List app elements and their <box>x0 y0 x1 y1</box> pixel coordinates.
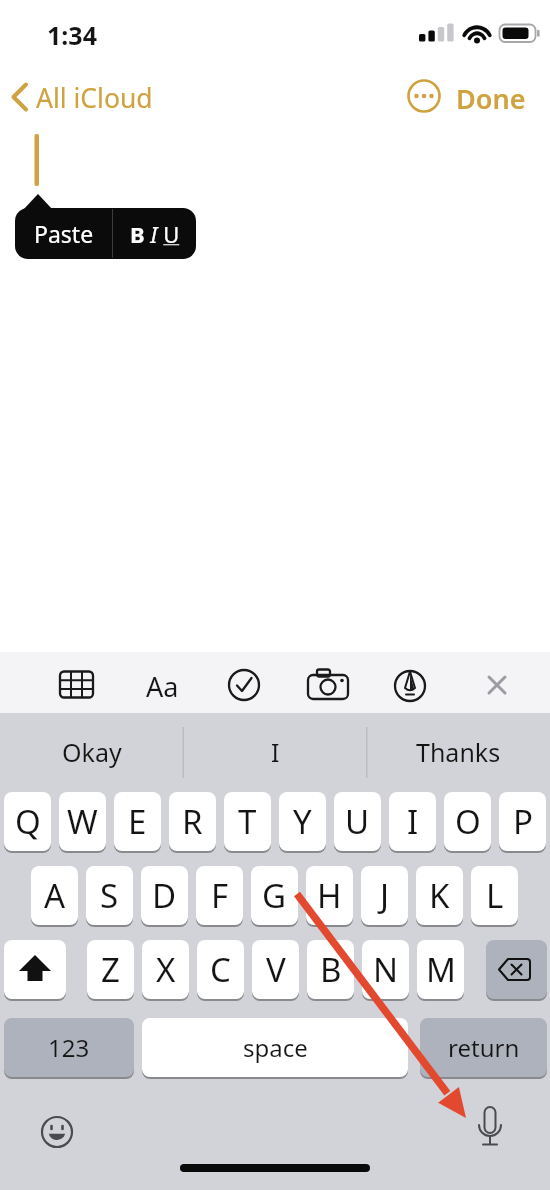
button[interactable]: O <box>444 792 491 851</box>
staticText: I <box>407 799 419 844</box>
button[interactable] <box>4 940 66 999</box>
staticText: E <box>128 799 147 844</box>
staticText: O <box>455 799 481 844</box>
staticText: space <box>243 1031 308 1064</box>
button[interactable]: C <box>197 940 244 999</box>
button[interactable]: V <box>252 940 299 999</box>
staticText: Q <box>15 799 41 844</box>
button[interactable]: Thanks <box>386 728 530 776</box>
button[interactable]: Z <box>87 940 134 999</box>
staticText: K <box>429 873 450 918</box>
staticText: 1:34 <box>47 18 97 50</box>
button[interactable]: H <box>306 866 353 925</box>
button[interactable]: N <box>362 940 409 999</box>
button[interactable]: Y <box>279 792 326 851</box>
button[interactable] <box>472 1105 508 1149</box>
button[interactable]: D <box>141 866 188 925</box>
button[interactable]: Okay <box>20 728 164 776</box>
button[interactable]: F <box>196 866 243 925</box>
button[interactable]: K <box>416 866 463 925</box>
button[interactable]: S <box>86 866 133 925</box>
button[interactable]: Paste <box>15 208 112 259</box>
staticText: M <box>426 947 456 992</box>
button[interactable]: I <box>389 792 436 851</box>
staticText: W <box>67 799 98 844</box>
button[interactable]: L <box>471 866 518 925</box>
staticText: R <box>182 799 203 844</box>
staticText: H <box>317 873 342 918</box>
staticText: return <box>448 1031 520 1064</box>
button[interactable] <box>486 940 547 999</box>
button[interactable]: return <box>420 1018 547 1077</box>
staticText: T <box>238 799 257 844</box>
staticText: Z <box>101 947 120 992</box>
staticText: D <box>152 873 177 918</box>
button[interactable]: X <box>142 940 189 999</box>
staticText: X <box>156 947 176 992</box>
staticText: C <box>210 947 231 992</box>
button[interactable] <box>392 666 428 704</box>
button[interactable] <box>406 78 442 114</box>
button[interactable] <box>306 666 350 704</box>
staticText: I <box>271 735 280 769</box>
button[interactable]: J <box>361 866 408 925</box>
button[interactable]: T <box>224 792 271 851</box>
button[interactable]: B <box>307 940 354 999</box>
button[interactable]: Aa <box>140 668 184 702</box>
button[interactable] <box>39 1114 75 1150</box>
staticText: L <box>486 873 504 918</box>
button[interactable]: P <box>499 792 546 851</box>
staticText: S <box>100 873 119 918</box>
staticText: All iCloud <box>36 80 153 114</box>
button[interactable]: Done <box>450 80 526 114</box>
staticText: Paste <box>34 218 94 249</box>
staticText: B <box>320 947 342 992</box>
staticText: Done <box>456 80 526 114</box>
staticText: V <box>266 947 286 992</box>
staticText: P <box>513 799 533 844</box>
staticText: Thanks <box>416 735 501 769</box>
staticText: B I U <box>130 219 180 249</box>
button[interactable]: I <box>203 728 347 776</box>
staticText: J <box>380 873 390 918</box>
button[interactable]: A <box>31 866 78 925</box>
button[interactable]: W <box>59 792 106 851</box>
button[interactable]: E <box>114 792 161 851</box>
staticText: Aa <box>146 668 179 702</box>
staticText: Y <box>293 799 312 844</box>
button[interactable]: M <box>417 940 464 999</box>
staticText: A <box>44 873 66 918</box>
staticText: F <box>211 873 229 918</box>
staticText: G <box>262 873 287 918</box>
button[interactable]: space <box>142 1018 408 1077</box>
button[interactable] <box>56 666 96 704</box>
button[interactable] <box>479 666 515 704</box>
button[interactable]: B I U <box>113 208 196 259</box>
button[interactable]: R <box>169 792 216 851</box>
button[interactable] <box>226 666 262 704</box>
staticText: N <box>373 947 399 992</box>
staticText: 123 <box>48 1031 90 1064</box>
button[interactable]: G <box>251 866 298 925</box>
staticText: Okay <box>62 735 122 769</box>
staticText: U <box>345 799 370 844</box>
button[interactable]: Q <box>4 792 51 851</box>
button[interactable]: U <box>334 792 381 851</box>
button[interactable]: All iCloud <box>36 80 206 114</box>
button[interactable]: 123 <box>4 1018 134 1077</box>
